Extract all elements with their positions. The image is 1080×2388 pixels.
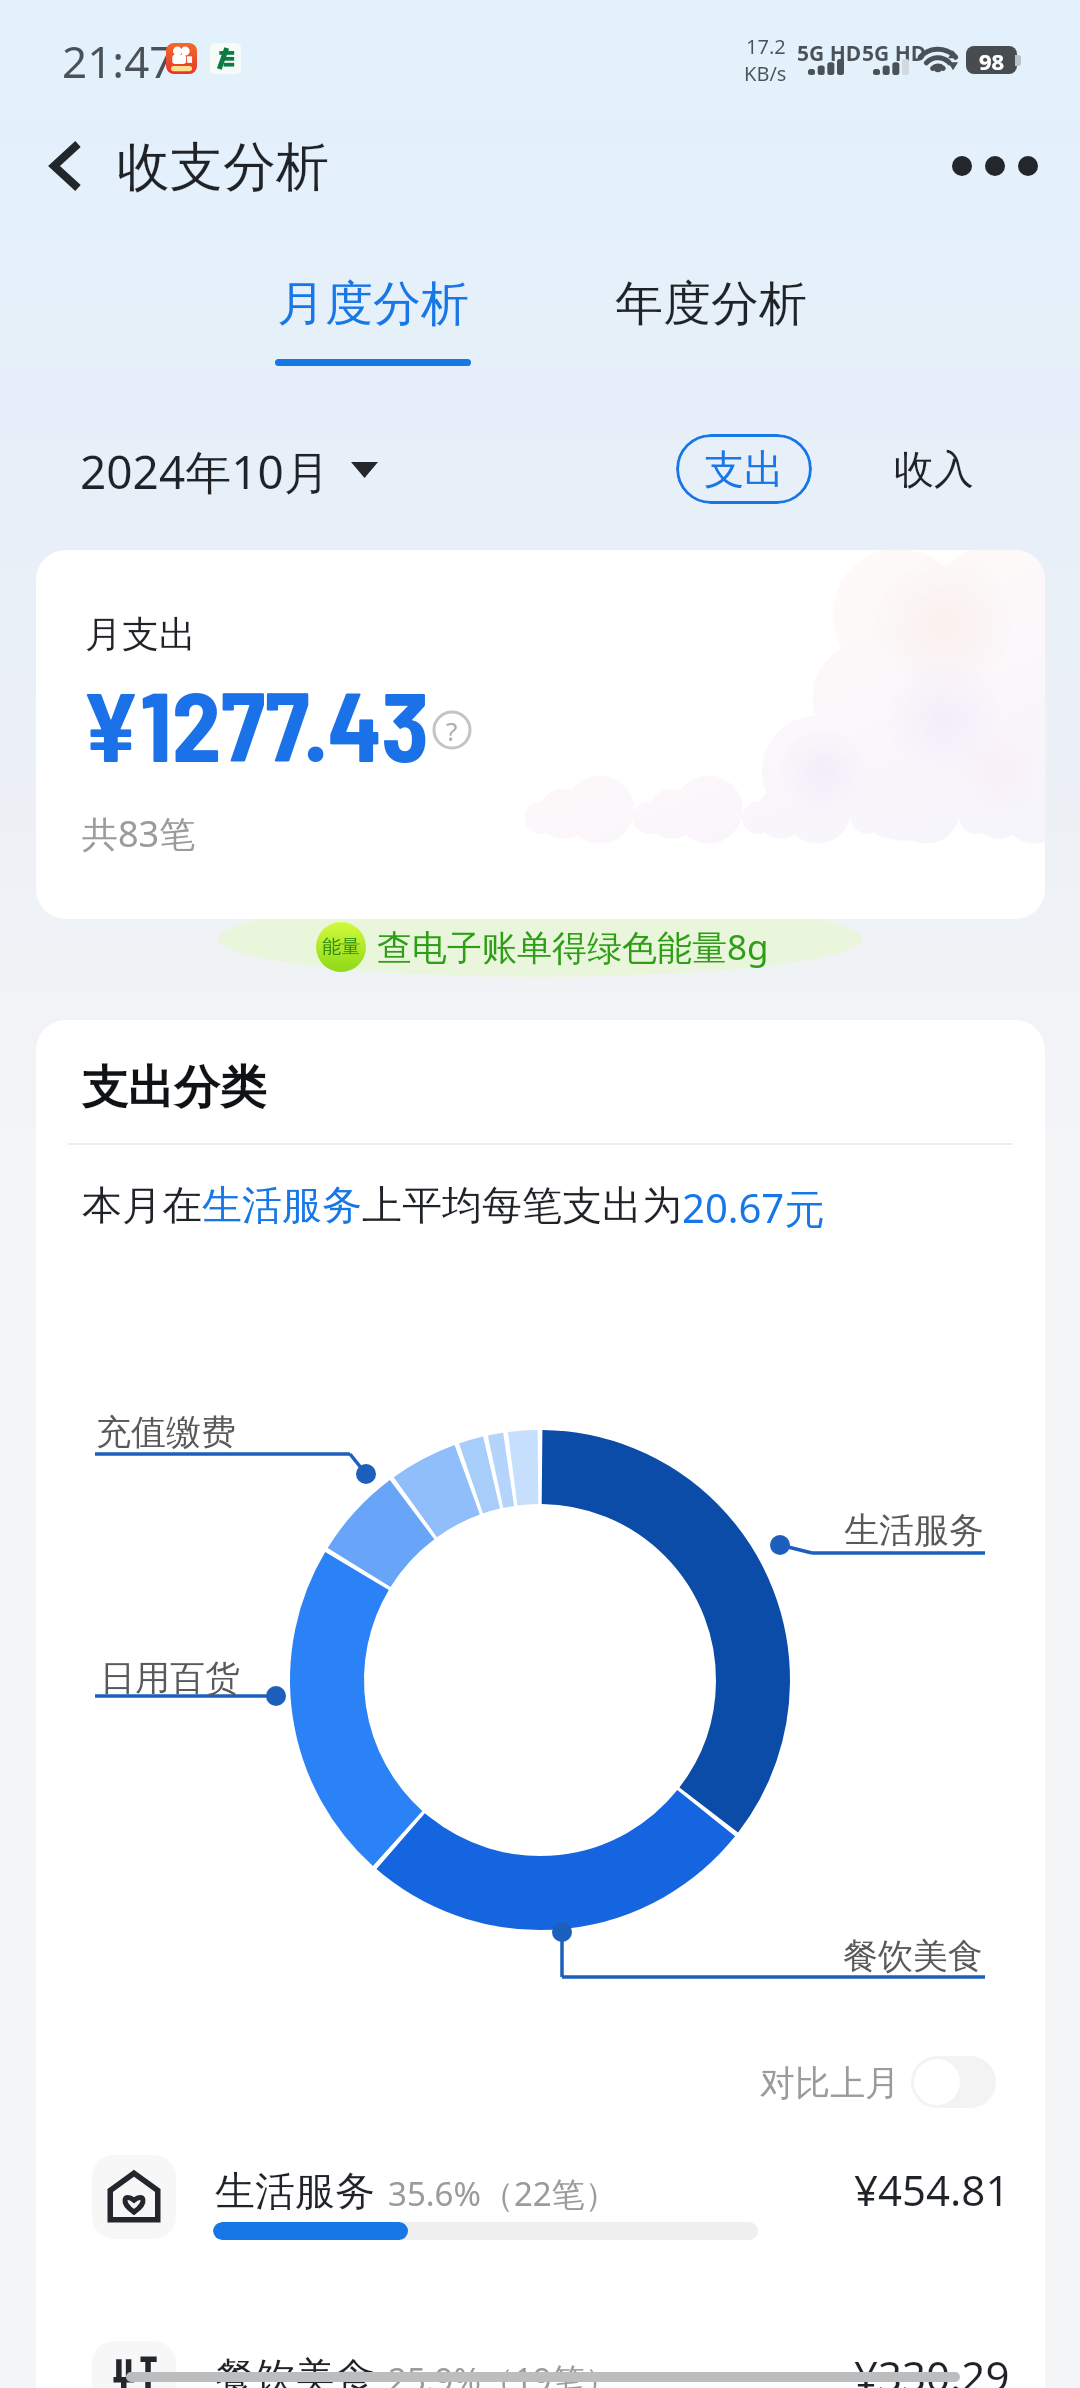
staticText: ¥454.81 bbox=[854, 2161, 1010, 2218]
button[interactable]: 查电子账单得绿色能量8g bbox=[377, 923, 769, 971]
staticText: ? bbox=[446, 713, 458, 748]
staticText: 25.9%（19笔） bbox=[388, 2357, 618, 2388]
staticText: 餐饮美食 bbox=[215, 2352, 375, 2388]
staticText: 日用百货 bbox=[100, 1656, 240, 1700]
button[interactable]: 2024年10月 bbox=[80, 440, 378, 500]
staticText: 21:47 bbox=[62, 31, 175, 91]
staticText: 月度分析 bbox=[277, 274, 469, 334]
staticText: 生活服务 bbox=[215, 2166, 375, 2216]
button[interactable]: 收入 bbox=[878, 434, 990, 504]
button[interactable]: 餐饮美食 bbox=[36, 2341, 1045, 2388]
staticText: 35.6%（22笔） bbox=[388, 2171, 618, 2216]
staticText: 17.2 bbox=[746, 33, 786, 60]
staticText: 上平均每笔支出为 bbox=[362, 1180, 682, 1230]
button[interactable]: More options bbox=[950, 121, 1040, 211]
staticText: 能量 bbox=[322, 935, 360, 959]
staticText: ¥330.29 bbox=[854, 2347, 1010, 2388]
button[interactable]: 生活服务 bbox=[36, 2155, 1045, 2265]
button[interactable]: 月度分析 bbox=[250, 262, 496, 382]
button[interactable]: 支出 bbox=[676, 434, 812, 504]
button[interactable]: 年度分析 bbox=[588, 262, 834, 382]
staticText: 98 bbox=[979, 46, 1005, 74]
staticText: KB/s bbox=[744, 60, 787, 87]
staticText: 20.67元 bbox=[682, 1180, 825, 1235]
staticText: 生活服务 bbox=[844, 1508, 984, 1552]
button[interactable]: 能量 bbox=[316, 922, 366, 972]
staticText: 5G HD bbox=[797, 39, 862, 68]
staticText: 餐饮美食 bbox=[843, 1934, 983, 1978]
staticText: 月支出 bbox=[85, 611, 196, 658]
staticText: 5G HD bbox=[862, 39, 927, 68]
button[interactable]: 月支出 bbox=[36, 550, 1045, 919]
staticText: 收入 bbox=[894, 444, 974, 494]
button[interactable]: Back bbox=[20, 120, 112, 212]
staticText: 2024年10月 bbox=[80, 440, 330, 500]
staticText: ¥1277.43 bbox=[81, 664, 430, 782]
staticText: 支出 bbox=[704, 444, 784, 494]
staticText: 支出分类 bbox=[82, 1059, 266, 1117]
staticText: 本月在 bbox=[82, 1180, 202, 1230]
staticText: 充值缴费 bbox=[96, 1410, 236, 1454]
staticText: 收支分析 bbox=[117, 134, 329, 201]
button[interactable]: Compare with last month bbox=[911, 2056, 996, 2108]
staticText: 共83笔 bbox=[82, 809, 196, 858]
staticText: 对比上月 bbox=[760, 2061, 900, 2105]
staticText: 年度分析 bbox=[615, 274, 807, 334]
staticText: 生活服务 bbox=[202, 1180, 362, 1230]
